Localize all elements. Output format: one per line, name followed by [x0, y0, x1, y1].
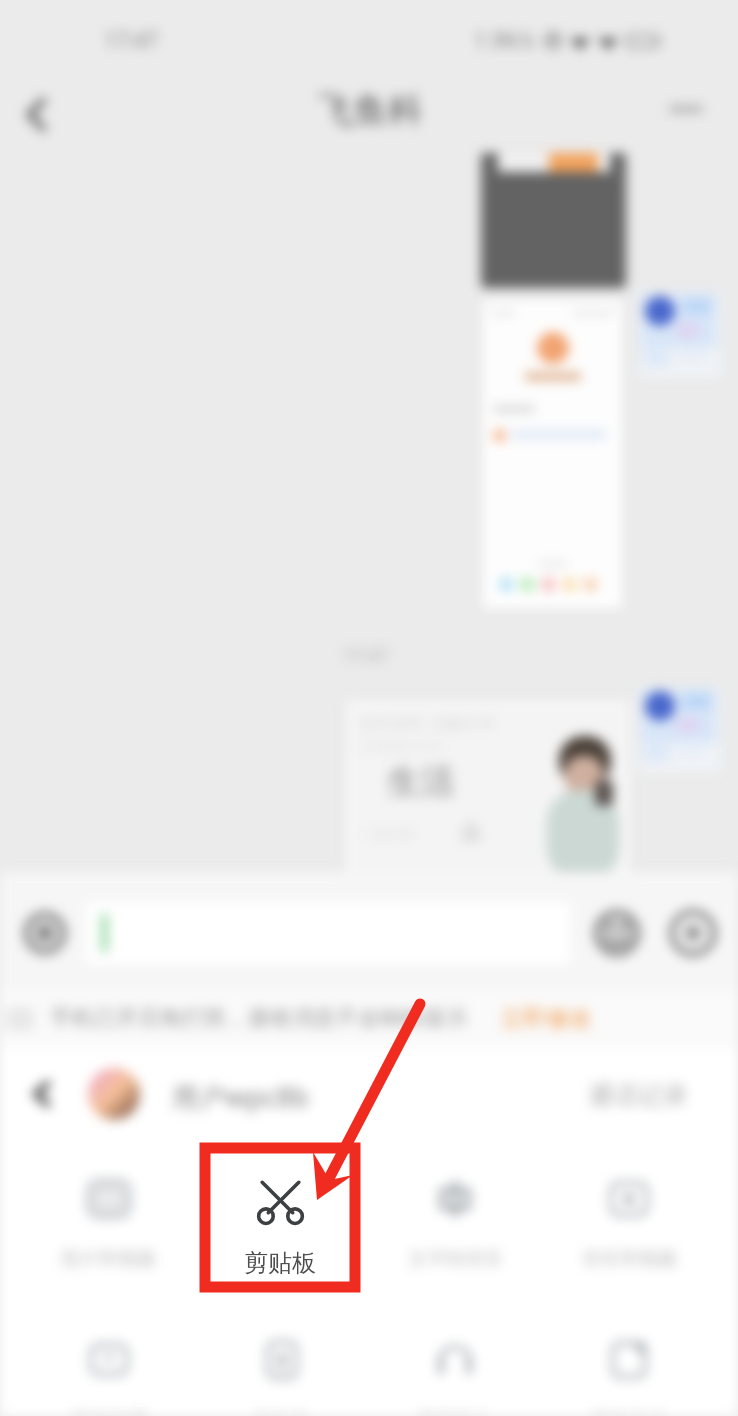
staticText: 我的收藏 — [71, 1408, 147, 1416]
staticText: 文字转语音 — [408, 1247, 503, 1271]
staticText: 飞鱼科 — [318, 88, 423, 132]
staticText: 1.9K/s — [474, 26, 535, 55]
staticText: 用户wpc8b — [172, 1078, 309, 1115]
staticText: 语音输入 — [417, 1408, 493, 1416]
staticText: 我的名片 — [591, 1408, 667, 1416]
button[interactable]: Back — [10, 88, 62, 140]
button[interactable]: 剪贴板 — [195, 1140, 368, 1301]
staticText: 剪贴板 — [244, 1248, 316, 1278]
button[interactable]: 照片和视频 — [22, 1140, 195, 1301]
staticText: 发红包 — [253, 1408, 310, 1416]
staticText: 立即修改 — [500, 1004, 592, 1033]
staticText: 手机已开启免打扰，接收消息不会响铃提示 — [50, 1004, 468, 1032]
button[interactable]: Back — [18, 1070, 66, 1118]
staticText: 语音和视频 — [582, 1247, 677, 1271]
staticText: 品 — [461, 820, 481, 845]
staticText: 通话记录 — [588, 1080, 688, 1111]
staticText: 照片和视频 — [61, 1247, 156, 1271]
button[interactable]: 语音和视频 — [542, 1140, 716, 1301]
staticText: 17:47 — [104, 26, 158, 55]
button[interactable]: 剪贴板 — [205, 1148, 355, 1287]
button[interactable]: 我的名片 — [542, 1301, 716, 1416]
button[interactable]: 发红包 — [195, 1301, 368, 1416]
button[interactable]: More options — [667, 907, 719, 959]
button[interactable]: 文字转语音 — [368, 1140, 542, 1301]
button[interactable]: Emoji — [591, 907, 643, 959]
button[interactable] — [86, 902, 570, 964]
staticText: 剪贴板 — [253, 1247, 310, 1271]
button[interactable]: Voice message — [19, 907, 71, 959]
button[interactable]: 我的收藏 — [22, 1301, 195, 1416]
staticText: 生活 — [387, 760, 455, 803]
button[interactable]: 语音输入 — [368, 1301, 542, 1416]
button[interactable]: More — [657, 85, 715, 133]
